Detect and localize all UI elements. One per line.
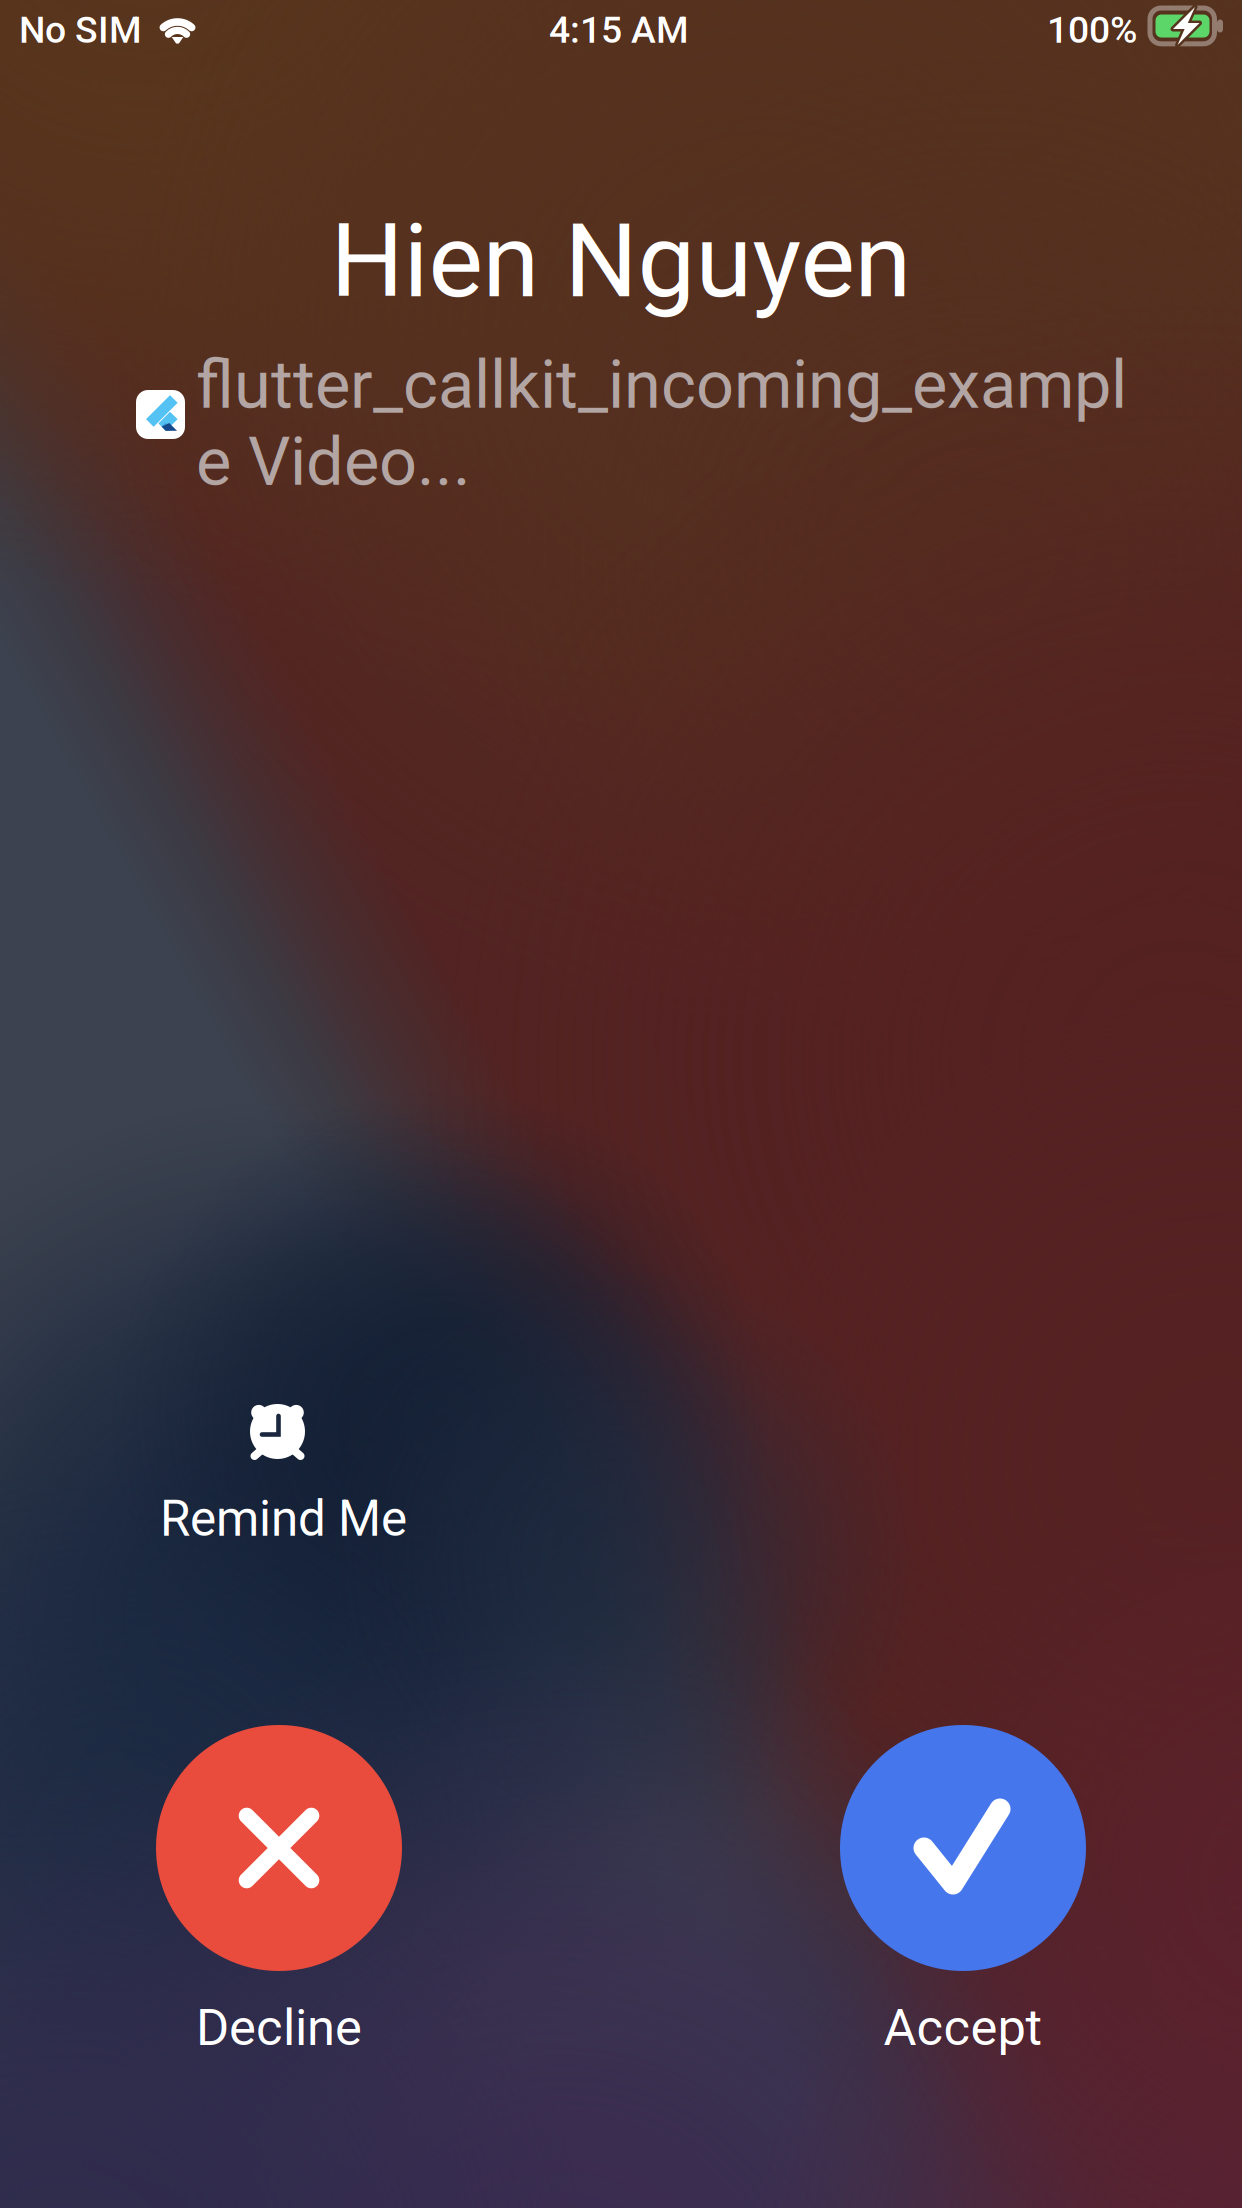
staticText: 100%: [1047, 8, 1137, 52]
staticText: 4:15 AM: [549, 8, 689, 52]
staticText: Hien Nguyen: [330, 201, 911, 321]
button[interactable]: Decline: [156, 1725, 402, 2055]
staticText: e Video...: [196, 423, 471, 501]
staticText: flutter_callkit_incoming_exampl: [196, 346, 1127, 424]
staticText: Remind Me: [160, 1490, 407, 1548]
staticText: No SIM: [19, 8, 142, 52]
staticText: Accept: [883, 1998, 1042, 2057]
button[interactable]: Remind Me: [157, 1398, 407, 1548]
button[interactable]: Accept: [840, 1725, 1086, 2055]
staticText: Decline: [196, 1998, 362, 2057]
